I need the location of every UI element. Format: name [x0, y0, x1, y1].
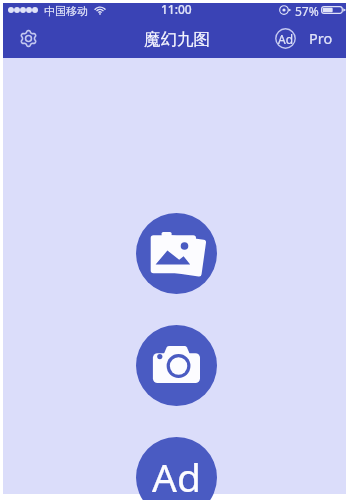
- button[interactable]: Pro: [309, 28, 333, 48]
- button[interactable]: Ad: [136, 437, 217, 500]
- button[interactable]: Settings: [19, 29, 38, 48]
- staticText: Pro: [309, 28, 333, 48]
- staticText: Ad: [278, 31, 294, 47]
- button[interactable]: Ad: [275, 28, 296, 49]
- staticText: 中国移动: [44, 4, 88, 18]
- staticText: 57%: [295, 3, 319, 19]
- button[interactable]: Take photo: [136, 325, 217, 406]
- staticText: Ad: [152, 450, 201, 500]
- staticText: 11:00: [161, 1, 192, 17]
- button[interactable]: Choose photo: [136, 213, 217, 294]
- staticText: 魔幻九图: [144, 29, 210, 50]
